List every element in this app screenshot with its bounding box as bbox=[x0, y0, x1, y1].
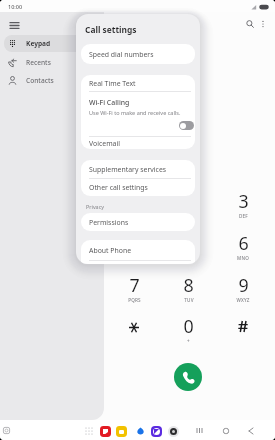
staticText: 5 bbox=[183, 231, 194, 255]
button[interactable]: Contacts bbox=[4, 72, 100, 89]
button[interactable]: Key 6 bbox=[224, 231, 262, 261]
button[interactable]: Key 1 bbox=[115, 189, 153, 219]
button[interactable]: Voicemail bbox=[81, 137, 195, 149]
staticText: 2 bbox=[183, 189, 194, 213]
button[interactable]: Navigation menu bbox=[4, 15, 24, 35]
staticText: Real Time Text bbox=[89, 79, 136, 88]
staticText: DEF bbox=[239, 213, 248, 219]
staticText: Contacts bbox=[26, 76, 54, 85]
staticText: Wi-Fi Calling bbox=[89, 98, 130, 107]
staticText: TUV bbox=[184, 297, 194, 303]
staticText: 6 bbox=[238, 231, 249, 255]
staticText: JKL bbox=[185, 255, 193, 261]
staticText: Speed dial numbers bbox=[89, 50, 154, 59]
button[interactable]: Browser bbox=[149, 424, 163, 437]
staticText: Supplementary services bbox=[89, 165, 167, 174]
staticText: MNO bbox=[237, 255, 249, 261]
other: Camera bbox=[167, 425, 179, 437]
button[interactable]: Keypad bbox=[4, 35, 100, 52]
button[interactable]: Key 2 bbox=[169, 189, 207, 219]
button[interactable] bbox=[81, 261, 195, 264]
staticText: + bbox=[187, 338, 190, 344]
button[interactable]: Key 9 bbox=[224, 273, 262, 303]
button[interactable]: Search bbox=[241, 15, 258, 32]
button[interactable]: Key 5 bbox=[169, 231, 207, 261]
button[interactable]: Wi-Fi Calling bbox=[81, 92, 195, 136]
button[interactable]: Back bbox=[244, 424, 258, 437]
button[interactable]: Real Time Text bbox=[81, 75, 195, 91]
button[interactable]: Messages bbox=[98, 424, 112, 437]
other: Browser bbox=[150, 425, 162, 437]
staticText: 10:00 bbox=[8, 3, 23, 10]
button[interactable]: Wi-Fi Calling bbox=[179, 121, 194, 130]
staticText: 1 bbox=[129, 189, 140, 213]
staticText: ABC bbox=[184, 213, 194, 219]
other: Notes bbox=[115, 425, 127, 437]
button[interactable]: Key 0 bbox=[169, 314, 207, 344]
button[interactable]: Key # bbox=[224, 314, 262, 344]
button[interactable]: Key 7 bbox=[115, 273, 153, 303]
button[interactable]: Supplementary services bbox=[81, 160, 195, 178]
staticText: Use Wi-Fi to make and receive calls. bbox=[89, 109, 181, 116]
staticText: Privacy bbox=[86, 203, 104, 210]
button[interactable]: Call bbox=[174, 363, 202, 391]
button[interactable]: Notes bbox=[114, 424, 128, 437]
staticText: 7 bbox=[129, 273, 140, 297]
staticText: 4 bbox=[129, 231, 140, 255]
other: Messages bbox=[99, 425, 111, 437]
button[interactable]: Key 3 bbox=[224, 189, 262, 219]
staticText: Voicemail bbox=[89, 139, 121, 148]
button[interactable]: Other call settings bbox=[81, 179, 195, 196]
button[interactable]: Key * bbox=[115, 314, 153, 344]
staticText: GHI bbox=[130, 255, 140, 261]
button[interactable]: Home bbox=[219, 424, 233, 437]
button[interactable]: Speed dial numbers bbox=[81, 44, 195, 64]
button[interactable] bbox=[82, 424, 96, 437]
button[interactable]: Permissions bbox=[81, 213, 195, 231]
button[interactable]: Weather bbox=[133, 424, 147, 437]
button[interactable]: Key 8 bbox=[169, 273, 207, 303]
button[interactable]: About Phone bbox=[81, 240, 195, 260]
staticText: Other call settings bbox=[89, 183, 148, 192]
button[interactable]: Camera bbox=[166, 424, 180, 437]
staticText: Keypad bbox=[26, 39, 51, 48]
button[interactable]: Clock bbox=[1, 425, 12, 436]
staticText: WXYZ bbox=[236, 297, 250, 303]
staticText: Permissions bbox=[89, 218, 129, 227]
button[interactable]: Key 4 bbox=[115, 231, 153, 261]
staticText: PQRS bbox=[128, 297, 141, 303]
staticText: 0 bbox=[183, 314, 194, 338]
staticText: Recents bbox=[26, 58, 51, 67]
staticText: About Phone bbox=[89, 246, 132, 255]
staticText: 3 bbox=[238, 189, 249, 213]
button[interactable]: More options bbox=[254, 15, 271, 32]
staticText: Call settings bbox=[85, 24, 137, 35]
other: Weather bbox=[134, 425, 146, 437]
staticText: 9 bbox=[238, 273, 249, 297]
button[interactable]: Recent apps bbox=[192, 424, 206, 437]
staticText: 8 bbox=[183, 273, 194, 297]
button[interactable]: Recents bbox=[4, 54, 100, 71]
